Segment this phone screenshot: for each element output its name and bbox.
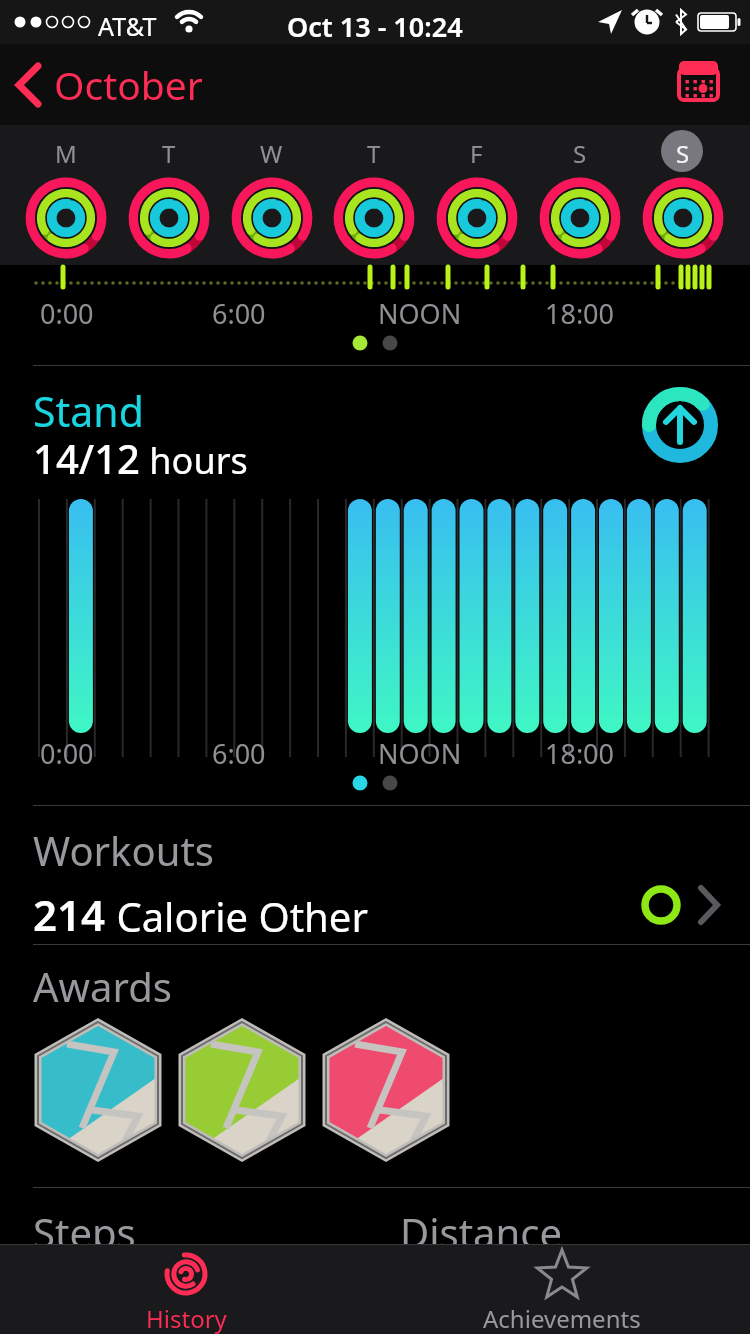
- button[interactable]: T: [117, 125, 220, 265]
- staticText: hours: [140, 436, 248, 485]
- button[interactable]: [679, 61, 719, 101]
- button[interactable]: F: [425, 125, 528, 265]
- staticText: 214: [33, 886, 106, 943]
- staticText: M: [55, 137, 77, 170]
- staticText: 18:00: [545, 735, 615, 772]
- staticText: 0:00: [40, 295, 94, 332]
- button[interactable]: [324, 1020, 450, 1160]
- button[interactable]: M: [14, 125, 117, 265]
- staticText: Steps: [33, 1205, 136, 1259]
- staticText: F: [470, 137, 483, 170]
- button[interactable]: W: [220, 125, 323, 265]
- button[interactable]: T: [322, 125, 425, 265]
- staticText: AT&T: [98, 9, 157, 43]
- button[interactable]: October: [14, 44, 203, 125]
- staticText: 18:00: [545, 295, 615, 332]
- staticText: NOON: [378, 735, 462, 772]
- staticText: History: [146, 1302, 227, 1334]
- staticText: Achievements: [483, 1302, 641, 1334]
- staticText: Calorie Other: [106, 889, 368, 943]
- staticText: S: [573, 137, 587, 170]
- staticText: T: [367, 137, 381, 170]
- staticText: October: [54, 58, 203, 111]
- staticText: 6:00: [212, 295, 266, 332]
- button[interactable]: History: [106, 1246, 266, 1334]
- staticText: 0:00: [40, 735, 94, 772]
- staticText: 14/12: [33, 431, 140, 485]
- staticText: Workouts: [33, 823, 214, 877]
- staticText: W: [260, 137, 283, 170]
- staticText: Stand: [33, 383, 144, 439]
- button[interactable]: Achievements: [482, 1246, 642, 1334]
- button[interactable]: S: [631, 125, 734, 265]
- staticText: NOON: [378, 295, 462, 332]
- staticText: 6:00: [212, 735, 266, 772]
- staticText: Awards: [33, 959, 172, 1013]
- staticText: T: [162, 137, 176, 170]
- button[interactable]: [642, 387, 718, 463]
- staticText: Oct 13 - 10:24: [287, 8, 463, 45]
- button[interactable]: [180, 1020, 306, 1160]
- staticText: Distance: [400, 1205, 563, 1259]
- staticText: S: [676, 137, 690, 170]
- button[interactable]: [36, 1020, 162, 1160]
- button[interactable]: Workouts: [0, 806, 750, 945]
- button[interactable]: S: [528, 125, 631, 265]
